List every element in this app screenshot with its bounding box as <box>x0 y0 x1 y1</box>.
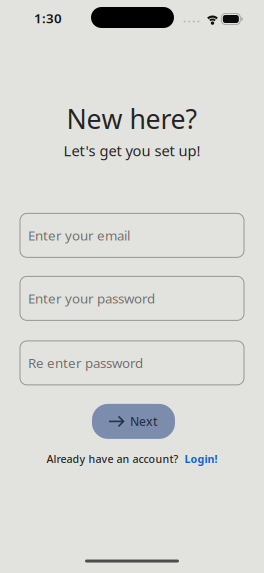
textField[interactable]: Re enter password <box>20 341 244 385</box>
staticText: Enter your password <box>28 289 155 307</box>
staticText: Re enter password <box>28 354 143 372</box>
button[interactable]: Login! <box>184 452 217 466</box>
staticText: Login! <box>184 452 217 466</box>
textField[interactable]: Enter your password <box>20 276 244 320</box>
staticText: Let's get you set up! <box>63 141 200 160</box>
button[interactable]: Next <box>90 404 173 439</box>
staticText: New here? <box>66 101 197 136</box>
textField[interactable]: Enter your email <box>20 213 244 257</box>
staticText: 1:30 <box>34 9 62 27</box>
staticText: Already have an account? <box>46 452 178 466</box>
staticText: Next <box>130 413 158 429</box>
staticText: Enter your email <box>28 226 130 244</box>
